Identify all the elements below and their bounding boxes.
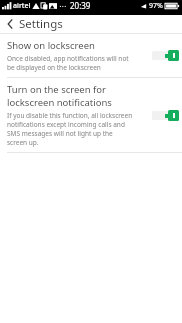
staticText: Turn on the screen for: [7, 83, 106, 96]
button[interactable]: Turn on the screen for: [0, 78, 182, 152]
button[interactable]: Back: [0, 15, 19, 33]
button[interactable]: Turn on the screen for lockscreen notifi…: [152, 109, 180, 122]
staticText: screen up.: [7, 138, 39, 147]
staticText: Once disabled, app notifications will no…: [7, 54, 129, 63]
staticText: airtel: [13, 1, 31, 11]
staticText: be displayed on the lockscreen: [7, 63, 101, 72]
staticText: lockscreen notifications: [7, 96, 112, 109]
staticText: 20:39: [70, 0, 91, 11]
staticText: Show on lockscreen: [7, 39, 95, 52]
staticText: 97%: [149, 1, 163, 11]
button[interactable]: Show on lockscreen: [0, 34, 182, 77]
staticText: SMS messages will not light up the: [7, 129, 113, 138]
staticText: If you disable this function, all locksc…: [7, 111, 133, 120]
button[interactable]: Show on lockscreen toggle: [152, 49, 180, 62]
staticText: Settings: [19, 16, 63, 32]
staticText: notifications except incoming calls and: [7, 120, 125, 129]
